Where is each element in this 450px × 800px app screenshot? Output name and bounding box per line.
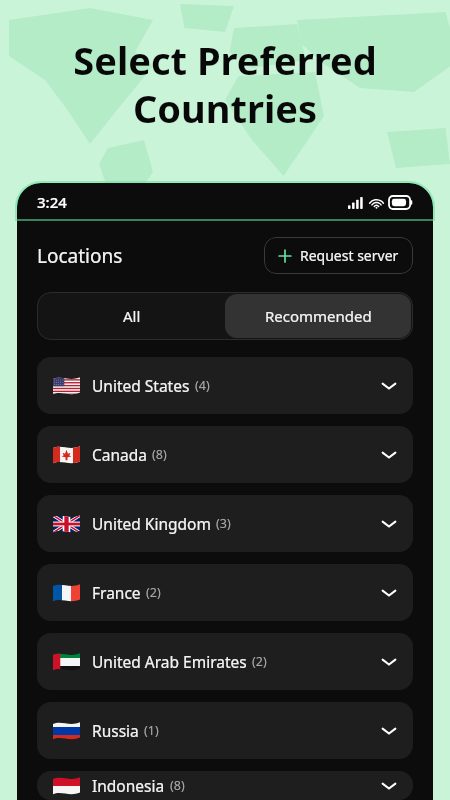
staticText: (8) bbox=[152, 446, 167, 463]
staticText: Russia bbox=[92, 720, 139, 741]
staticText: Canada bbox=[92, 444, 147, 465]
staticText: Recommended bbox=[265, 306, 372, 326]
staticText: (3) bbox=[216, 515, 231, 532]
button[interactable]: United States bbox=[37, 357, 413, 414]
button[interactable]: United Kingdom bbox=[37, 495, 413, 552]
staticText: (2) bbox=[252, 653, 267, 670]
staticText: Request server bbox=[300, 246, 399, 265]
button[interactable]: Request server bbox=[264, 237, 413, 274]
staticText: (1) bbox=[144, 722, 159, 739]
staticText: Select Preferred Countries bbox=[73, 34, 377, 134]
staticText: 3:24 bbox=[37, 192, 67, 212]
staticText: United States bbox=[92, 375, 190, 396]
staticText: All bbox=[123, 306, 141, 326]
button[interactable]: Recommended bbox=[225, 294, 411, 338]
staticText: (4) bbox=[195, 377, 210, 394]
button[interactable]: Russia bbox=[37, 702, 413, 759]
button[interactable]: United Arab Emirates bbox=[37, 633, 413, 690]
button[interactable]: France bbox=[37, 564, 413, 621]
staticText: France bbox=[92, 582, 141, 603]
staticText: Locations bbox=[37, 243, 123, 269]
staticText: United Arab Emirates bbox=[92, 651, 247, 672]
staticText: (2) bbox=[146, 584, 161, 601]
staticText: (8) bbox=[170, 777, 185, 794]
button[interactable]: All bbox=[39, 294, 225, 338]
button[interactable]: Indonesia bbox=[37, 771, 413, 800]
button[interactable]: Canada bbox=[37, 426, 413, 483]
staticText: United Kingdom bbox=[92, 513, 211, 534]
staticText: Indonesia bbox=[92, 775, 165, 796]
